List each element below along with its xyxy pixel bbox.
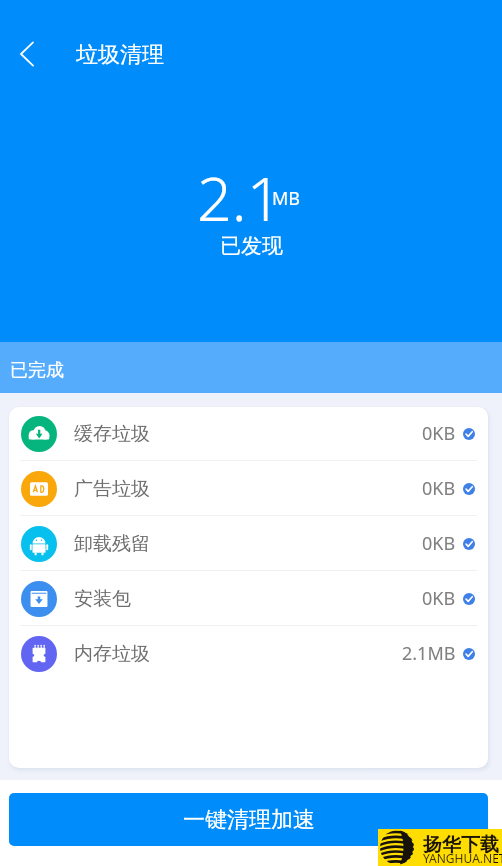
staticText: 已完成	[10, 359, 64, 382]
staticText: 0KB	[422, 421, 456, 446]
staticText: 扬华下载	[423, 833, 499, 857]
staticText: 内存垃圾	[74, 642, 150, 666]
button[interactable]: Back	[9, 32, 45, 76]
staticText: MB	[272, 186, 301, 211]
button[interactable]: 广告垃圾	[9, 461, 488, 516]
button[interactable]: 内存垃圾	[9, 626, 488, 681]
button[interactable]: 一键清理加速	[9, 793, 488, 846]
button[interactable]: 卸载残留	[9, 516, 488, 571]
staticText: 0KB	[422, 531, 456, 556]
staticText: 缓存垃圾	[74, 422, 150, 446]
staticText: 0KB	[422, 586, 456, 611]
button[interactable]: 安装包	[9, 571, 488, 626]
staticText: YANGHUA.NET	[423, 850, 502, 866]
button[interactable]: 缓存垃圾	[9, 407, 488, 461]
staticText: 0KB	[422, 476, 456, 501]
staticText: 卸载残留	[74, 532, 150, 556]
staticText: 2.1MB	[402, 641, 456, 666]
staticText: 垃圾清理	[76, 41, 164, 69]
staticText: 广告垃圾	[74, 477, 150, 501]
staticText: 已发现	[220, 233, 283, 259]
staticText: 安装包	[74, 587, 131, 611]
staticText: 2.1	[197, 156, 282, 226]
staticText: 一键清理加速	[183, 806, 315, 834]
